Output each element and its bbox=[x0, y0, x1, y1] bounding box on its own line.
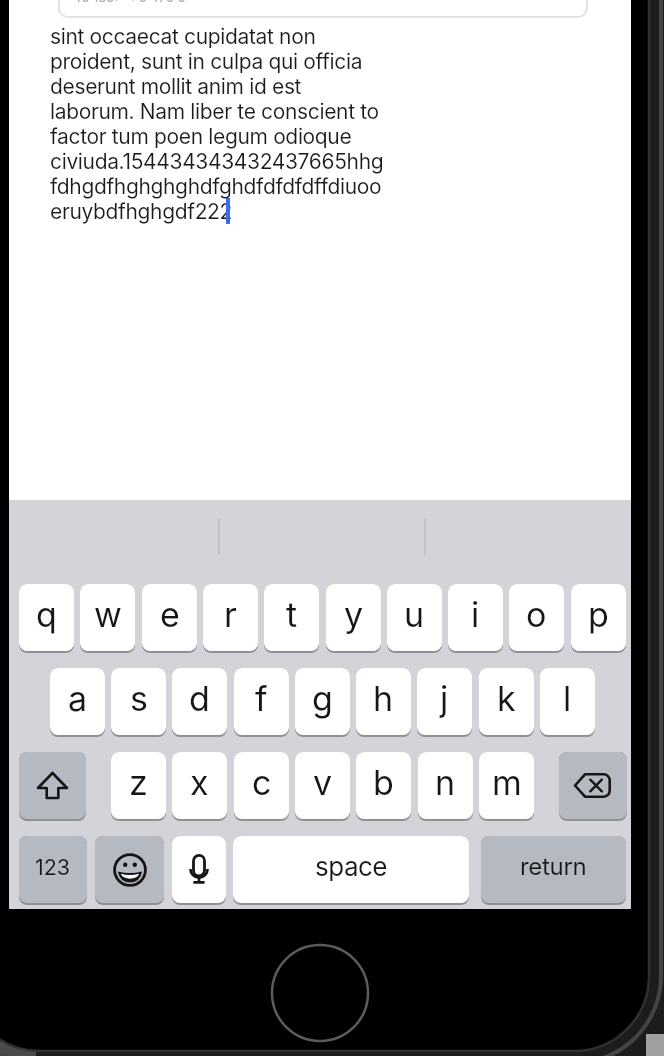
staticText: e bbox=[160, 594, 180, 635]
button[interactable]: 45 185> < 5 470 5 bbox=[0, 0, 664, 1056]
staticText: o bbox=[526, 594, 547, 635]
button[interactable]: j bbox=[417, 668, 472, 735]
button[interactable]: f bbox=[234, 668, 289, 735]
staticText: g bbox=[312, 678, 333, 719]
staticText: i bbox=[471, 594, 480, 635]
staticText: j bbox=[440, 678, 449, 719]
button[interactable]: a bbox=[50, 668, 105, 735]
staticText: w bbox=[94, 594, 122, 635]
staticText: 123 bbox=[35, 854, 71, 880]
button[interactable]: d bbox=[172, 668, 227, 735]
staticText: t bbox=[286, 594, 298, 635]
staticText: return bbox=[520, 852, 587, 881]
staticText: m bbox=[492, 762, 522, 803]
staticText: h bbox=[373, 678, 394, 719]
button[interactable]: space bbox=[233, 836, 469, 903]
staticText: l bbox=[563, 678, 572, 719]
button[interactable]: x bbox=[172, 752, 227, 819]
staticText: proident, sunt in culpa qui officia bbox=[50, 49, 363, 74]
staticText: y bbox=[344, 594, 364, 635]
button[interactable]: b bbox=[356, 752, 411, 819]
staticText: d bbox=[189, 678, 210, 719]
staticText: f bbox=[255, 678, 268, 719]
staticText: q bbox=[36, 594, 57, 635]
staticText: u bbox=[404, 594, 425, 635]
button[interactable]: k bbox=[479, 668, 534, 735]
button[interactable]: g bbox=[295, 668, 350, 735]
button[interactable] bbox=[172, 836, 226, 903]
staticText: k bbox=[497, 678, 516, 719]
staticText: x bbox=[190, 762, 209, 803]
staticText: space bbox=[315, 851, 388, 882]
staticText: v bbox=[313, 762, 333, 803]
button[interactable]: return bbox=[481, 836, 626, 903]
button[interactable]: y bbox=[326, 584, 381, 651]
button[interactable]: 123 bbox=[19, 836, 87, 903]
staticText: laborum. Nam liber te conscient to bbox=[50, 99, 379, 124]
button[interactable]: z bbox=[111, 752, 166, 819]
staticText: s bbox=[130, 678, 148, 719]
staticText: sint occaecat cupidatat non bbox=[50, 24, 316, 49]
button[interactable] bbox=[559, 752, 627, 819]
button[interactable]: i bbox=[448, 584, 503, 651]
button[interactable]: e bbox=[142, 584, 197, 651]
button[interactable]: o bbox=[509, 584, 564, 651]
staticText: c bbox=[252, 762, 272, 803]
staticText: factor tum poen legum odioque bbox=[50, 124, 352, 149]
button[interactable]: m bbox=[479, 752, 534, 819]
staticText: p bbox=[588, 594, 609, 635]
button[interactable]: c bbox=[234, 752, 289, 819]
button[interactable] bbox=[95, 836, 164, 903]
staticText: eruybdfhghgdf222 bbox=[50, 199, 233, 224]
button[interactable]: h bbox=[356, 668, 411, 735]
button[interactable]: t bbox=[264, 584, 319, 651]
staticText: fdhgdfhghghghdfghdfdfdfdffdiuoo bbox=[50, 174, 382, 199]
button[interactable]: l bbox=[540, 668, 595, 735]
staticText: n bbox=[435, 762, 456, 803]
staticText: z bbox=[129, 762, 148, 803]
staticText: deserunt mollit anim id est bbox=[50, 74, 302, 99]
staticText: a bbox=[68, 678, 88, 719]
button[interactable]: u bbox=[387, 584, 442, 651]
staticText: r bbox=[224, 594, 237, 635]
button[interactable]: r bbox=[203, 584, 258, 651]
button[interactable]: p bbox=[571, 584, 626, 651]
button[interactable]: q bbox=[19, 584, 74, 651]
button[interactable] bbox=[19, 752, 86, 819]
staticText: civiuda.154434343432437665hhg bbox=[50, 149, 384, 174]
button[interactable]: v bbox=[295, 752, 350, 819]
staticText: 45 185> < 5 470 5 bbox=[73, 0, 186, 5]
button[interactable]: n bbox=[418, 752, 473, 819]
button[interactable]: sint occaecat cupidatat non bbox=[50, 24, 384, 49]
button[interactable]: w bbox=[80, 584, 135, 651]
button[interactable]: s bbox=[111, 668, 166, 735]
staticText: b bbox=[373, 762, 394, 803]
